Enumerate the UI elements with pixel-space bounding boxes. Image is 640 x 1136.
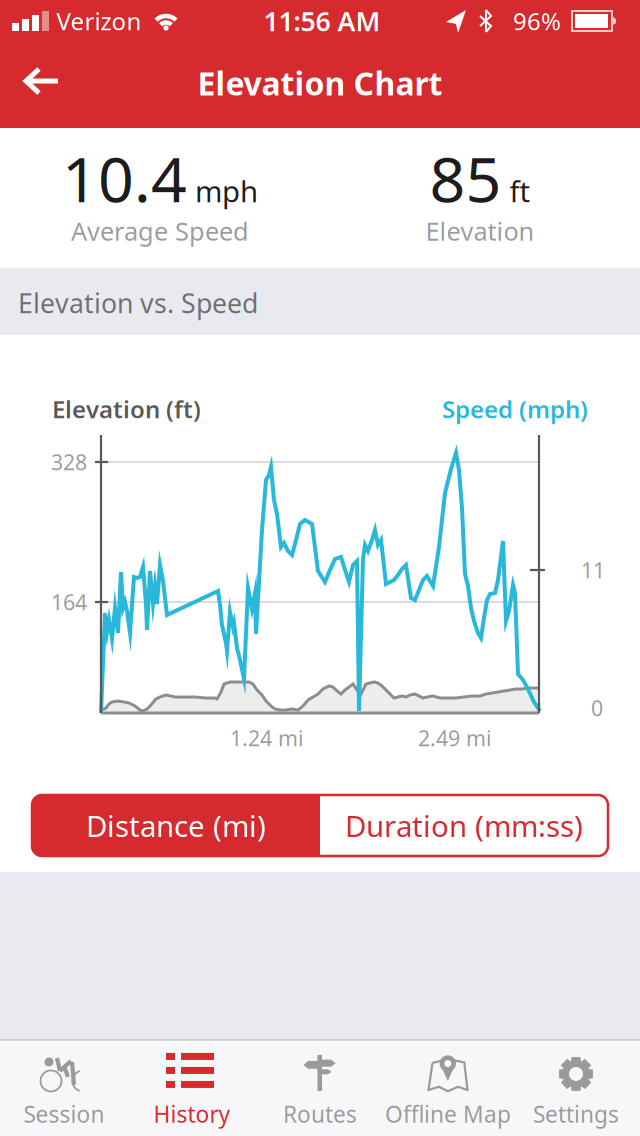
- staticText: Elevation Chart: [197, 62, 442, 104]
- staticText: 328: [51, 448, 87, 476]
- staticText: Settings: [533, 1099, 619, 1129]
- staticText: Distance (mi): [86, 806, 266, 845]
- button[interactable]: Back: [18, 65, 66, 105]
- staticText: Speed (mph): [442, 393, 588, 425]
- staticText: Duration (mm:ss): [345, 806, 583, 845]
- staticText: 96%: [513, 5, 561, 37]
- staticText: mph: [195, 171, 258, 210]
- staticText: 10.4: [62, 136, 187, 220]
- button[interactable]: Routes: [256, 1041, 383, 1135]
- staticText: 85: [429, 136, 501, 220]
- staticText: ft: [509, 171, 530, 210]
- staticText: Offline Map: [385, 1099, 511, 1129]
- button[interactable]: Duration (mm:ss): [320, 795, 608, 856]
- staticText: 11: [581, 556, 605, 584]
- button[interactable]: Distance (mi): [32, 795, 320, 856]
- button[interactable]: Offline Map: [384, 1041, 511, 1135]
- staticText: History: [153, 1099, 230, 1129]
- staticText: Verizon: [56, 5, 141, 37]
- staticText: Elevation vs. Speed: [18, 285, 258, 321]
- staticText: Elevation (ft): [52, 393, 201, 425]
- staticText: Routes: [283, 1099, 357, 1129]
- staticText: 2.49 mi: [418, 724, 492, 752]
- staticText: Session: [23, 1099, 104, 1129]
- button[interactable]: History: [128, 1041, 255, 1135]
- staticText: Average Speed: [71, 214, 249, 248]
- staticText: 1.24 mi: [230, 724, 304, 752]
- staticText: 0: [591, 694, 603, 722]
- staticText: 164: [51, 588, 87, 616]
- button[interactable]: Settings: [512, 1041, 639, 1135]
- staticText: Elevation: [425, 214, 534, 248]
- button[interactable]: Session: [0, 1041, 127, 1135]
- staticText: 11:56 AM: [263, 3, 380, 39]
